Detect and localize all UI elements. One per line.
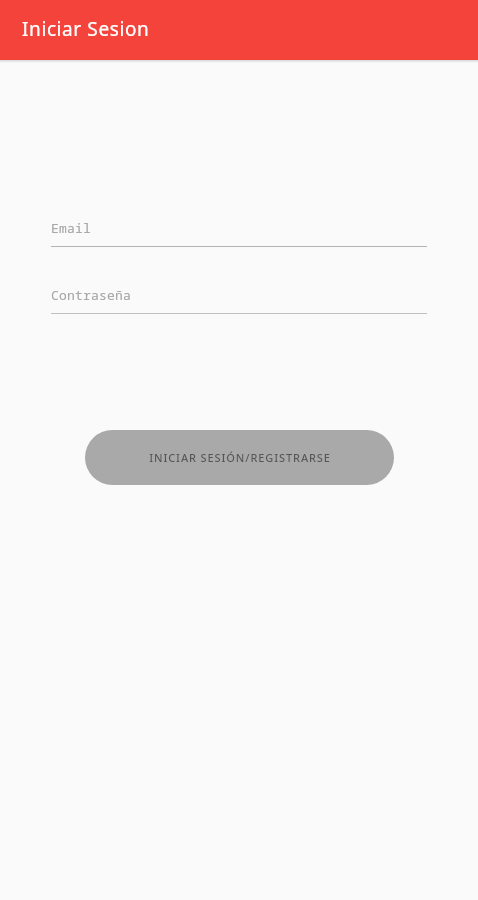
- button[interactable]: Contraseña: [51, 280, 427, 314]
- button[interactable]: Email: [51, 213, 427, 247]
- staticText: Contraseña: [51, 286, 132, 304]
- staticText: Email: [51, 219, 92, 237]
- staticText: Iniciar Sesion: [22, 16, 150, 42]
- button[interactable]: INICIAR SESIÓN/REGISTRARSE: [85, 430, 394, 485]
- staticText: INICIAR SESIÓN/REGISTRARSE: [149, 450, 331, 465]
